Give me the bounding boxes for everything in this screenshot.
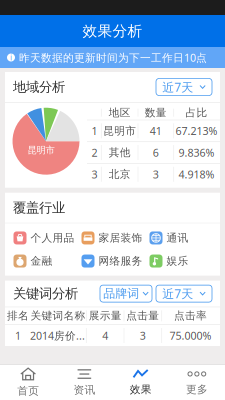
staticText: 2014房价东… [30,328,86,343]
staticText: 3 [153,167,159,181]
button[interactable]: 金融 [13,254,79,268]
staticText: 地域分析 [13,79,65,95]
staticText: 点击量 [126,309,159,322]
button[interactable]: 个人用品 [13,231,79,244]
staticText: 效果分析 [82,22,142,40]
staticText: 昆明市 [27,144,54,156]
button[interactable]: 首页 [0,365,56,400]
button[interactable]: 资讯 [56,365,112,400]
staticText: 占比 [186,106,208,119]
staticText: 其他 [109,146,131,159]
staticText: 4 [102,328,108,343]
staticText: 1 [91,124,97,138]
button[interactable]: 品牌词 [100,285,152,302]
button[interactable]: 近7天 [156,78,212,95]
button[interactable]: 通讯 [149,231,215,244]
staticText: 关键词名称 [30,309,85,322]
staticText: 北京 [109,168,131,181]
staticText: 41 [150,124,162,138]
staticText: 1 [15,328,21,343]
staticText: 3 [91,167,97,181]
button[interactable]: 家居装饰 [81,231,147,244]
staticText: 个人用品 [30,231,74,244]
staticText: 娱乐 [166,254,188,268]
staticText: 3 [140,328,146,343]
button[interactable]: 更多 [169,365,225,400]
button[interactable]: 娱乐 [149,254,215,268]
staticText: 首页 [17,384,39,397]
staticText: 地区 [109,106,131,119]
staticText: 近7天 [162,79,193,95]
staticText: 关键词分析 [13,285,78,302]
staticText: 品牌词 [103,286,139,301]
button[interactable]: 近7天 [156,285,212,302]
staticText: 数量 [145,106,167,119]
staticText: 覆盖行业 [13,199,65,216]
staticText: 67.213% [176,124,218,138]
staticText: 金融 [30,254,52,268]
staticText: 排名 [7,309,29,322]
staticText: 资讯 [73,383,95,396]
staticText: 点击率 [174,309,207,322]
staticText: 9.836% [179,145,215,160]
staticText: 昨天数据的更新时间为下一工作日10点 [19,50,207,65]
staticText: 网络服务 [98,254,142,268]
staticText: 近7天 [162,286,193,301]
button[interactable]: 网络服务 [81,254,147,268]
staticText: 更多 [186,383,208,396]
staticText: 展示量 [89,309,122,322]
staticText: i [10,52,12,63]
staticText: 家居装饰 [98,231,142,244]
staticText: 通讯 [166,231,188,244]
staticText: 4.918% [179,167,215,181]
staticText: 2 [91,145,97,160]
staticText: 效果 [130,383,152,396]
staticText: 昆明市 [103,124,136,137]
button[interactable]: 效果 [112,365,169,400]
staticText: 75.000% [170,328,212,343]
staticText: 6 [153,145,159,160]
